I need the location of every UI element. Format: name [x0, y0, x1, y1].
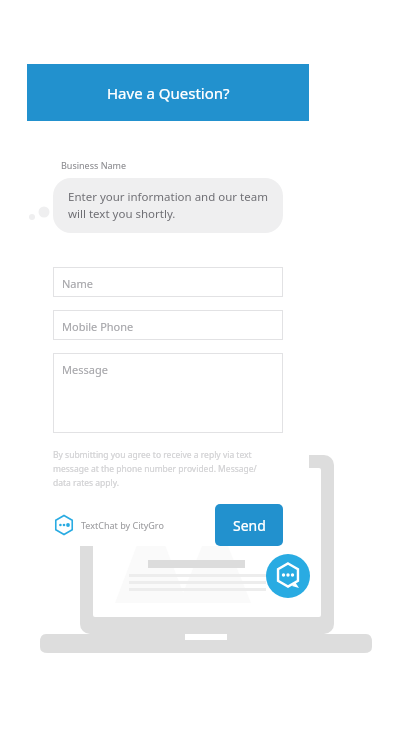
- staticText: Send: [233, 516, 266, 535]
- staticText: Message: [62, 362, 108, 377]
- staticText: Have a Question?: [107, 83, 230, 103]
- staticText: Mobile Phone: [62, 319, 134, 334]
- button[interactable]: Name: [53, 267, 283, 297]
- button[interactable]: TextChat by CityGro: [53, 514, 164, 536]
- button[interactable]: Open chat: [266, 554, 310, 598]
- button[interactable]: Mobile Phone: [53, 310, 283, 340]
- staticText: By submitting you agree to receive a rep…: [53, 449, 271, 488]
- button[interactable]: Message: [53, 353, 283, 433]
- staticText: Enter your information and our team will…: [68, 189, 268, 222]
- staticText: Name: [62, 276, 94, 291]
- staticText: Business Name: [61, 159, 127, 171]
- staticText: TextChat by CityGro: [81, 519, 164, 531]
- button[interactable]: Send: [215, 504, 283, 546]
